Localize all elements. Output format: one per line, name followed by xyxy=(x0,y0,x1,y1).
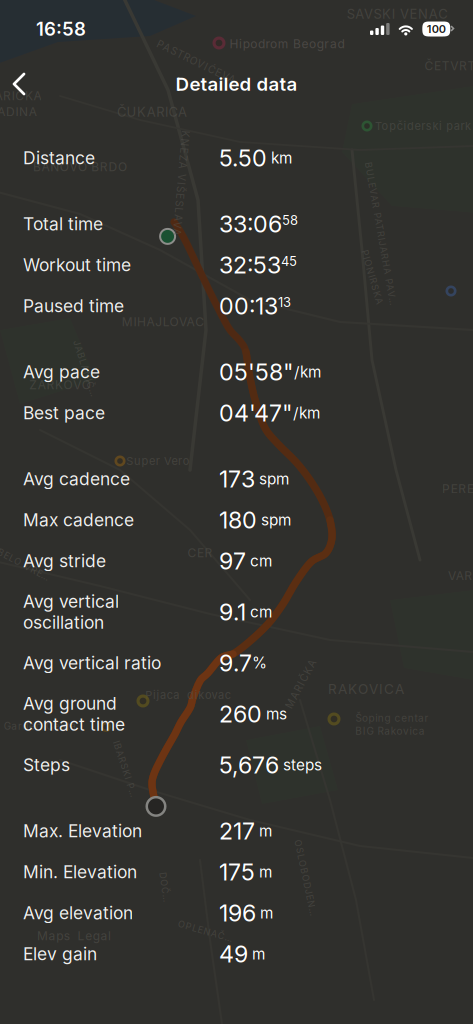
staticText: Maps Legal xyxy=(37,929,111,943)
staticText: OSLOBODJENJA xyxy=(265,875,347,885)
staticText: Avg vertical ratio xyxy=(23,652,161,674)
staticText: 196 xyxy=(219,899,256,927)
staticText: 97 xyxy=(219,547,246,575)
staticText: 16:58 xyxy=(36,18,86,40)
staticText: spm xyxy=(255,470,289,488)
staticText: 260 xyxy=(219,700,262,728)
staticText: 33:0658 xyxy=(219,210,298,238)
button[interactable]: Back xyxy=(0,62,38,106)
staticText: 180 xyxy=(219,506,257,534)
staticText: Super Vero xyxy=(126,454,190,468)
staticText: Total time xyxy=(23,213,103,235)
staticText: m xyxy=(256,904,273,922)
staticText: VARI xyxy=(448,569,473,583)
staticText: 5.50 xyxy=(219,144,267,172)
staticText: Avg cadence xyxy=(23,468,130,490)
staticText: 5,676 xyxy=(219,751,279,779)
staticText: Avg ground contact time xyxy=(23,693,125,735)
staticText: PIONIRSKA xyxy=(344,272,400,282)
staticText: spm xyxy=(257,511,291,529)
staticText: m xyxy=(248,945,265,963)
staticText: Avg stride xyxy=(23,550,106,572)
staticText: ARIČKA xyxy=(0,89,41,103)
staticText: 32:5345 xyxy=(219,251,297,279)
staticText: ŽARKOVO xyxy=(29,378,91,392)
staticText: 04'47" xyxy=(219,399,293,427)
staticText: /km xyxy=(293,404,320,422)
staticText: Workout time xyxy=(23,254,131,276)
staticText: Best pace xyxy=(23,402,105,424)
staticText: Max cadence xyxy=(23,509,134,531)
staticText: m xyxy=(255,822,272,840)
staticText: BIG Rakovica xyxy=(355,725,425,737)
staticText: Avg elevation xyxy=(23,902,133,924)
staticText: MARIČKA xyxy=(274,678,328,690)
staticText: Paused time xyxy=(23,295,124,317)
staticText: Steps xyxy=(23,754,70,776)
staticText: SAVSKI VENAC xyxy=(347,6,447,22)
staticText: Topčiderski park xyxy=(375,119,471,133)
staticText: m xyxy=(255,863,272,881)
staticText: Detailed data xyxy=(175,73,297,95)
staticText: Min. Elevation xyxy=(23,861,137,883)
staticText: JABLANIČKA xyxy=(54,366,118,376)
staticText: Šoping centar xyxy=(355,712,429,724)
staticText: 9.7 xyxy=(219,649,252,677)
staticText: Pijaca dikovac xyxy=(145,688,231,702)
staticText: OPLENAČKA xyxy=(177,927,239,937)
staticText: 100 xyxy=(427,22,446,36)
staticText: BELO VRELO xyxy=(0,561,57,571)
staticText: Distance xyxy=(23,147,95,169)
staticText: RAKOVICA xyxy=(328,681,404,697)
staticText: IBARSKI PUT xyxy=(93,767,158,777)
staticText: 217 xyxy=(219,817,255,845)
staticText: cm xyxy=(246,603,272,621)
staticText: MIHAJLOVAC xyxy=(122,315,204,329)
staticText: cm xyxy=(246,552,272,570)
staticText: ČETVRT xyxy=(424,59,473,73)
staticText: Elev gain xyxy=(23,943,97,965)
staticText: 00:1313 xyxy=(219,292,291,320)
staticText: 49 xyxy=(219,940,248,968)
staticText: PASTROVIĆEVA xyxy=(153,56,239,68)
staticText: BANOVO BRDO xyxy=(33,160,127,174)
staticText: Garden Centa xyxy=(4,720,76,732)
staticText: /km xyxy=(294,363,321,381)
staticText: Avg pace xyxy=(23,361,100,383)
staticText: ADINA xyxy=(0,105,37,119)
staticText: 175 xyxy=(219,858,255,886)
staticText: Avg vertical oscillation xyxy=(23,591,119,633)
staticText: CER xyxy=(187,546,213,560)
staticText: 05'58" xyxy=(219,358,294,386)
staticText: Hipodrom Beograd xyxy=(229,37,344,51)
staticText: 173 xyxy=(219,465,255,493)
staticText: PERE xyxy=(442,482,473,496)
staticText: ČUKARICA xyxy=(117,104,187,120)
staticText: steps xyxy=(279,756,322,774)
staticText: km xyxy=(267,149,292,167)
staticText: % xyxy=(252,654,267,672)
staticText: Max. Elevation xyxy=(23,820,142,842)
staticText: ms xyxy=(262,705,287,723)
staticText: 9.1 xyxy=(219,598,246,626)
